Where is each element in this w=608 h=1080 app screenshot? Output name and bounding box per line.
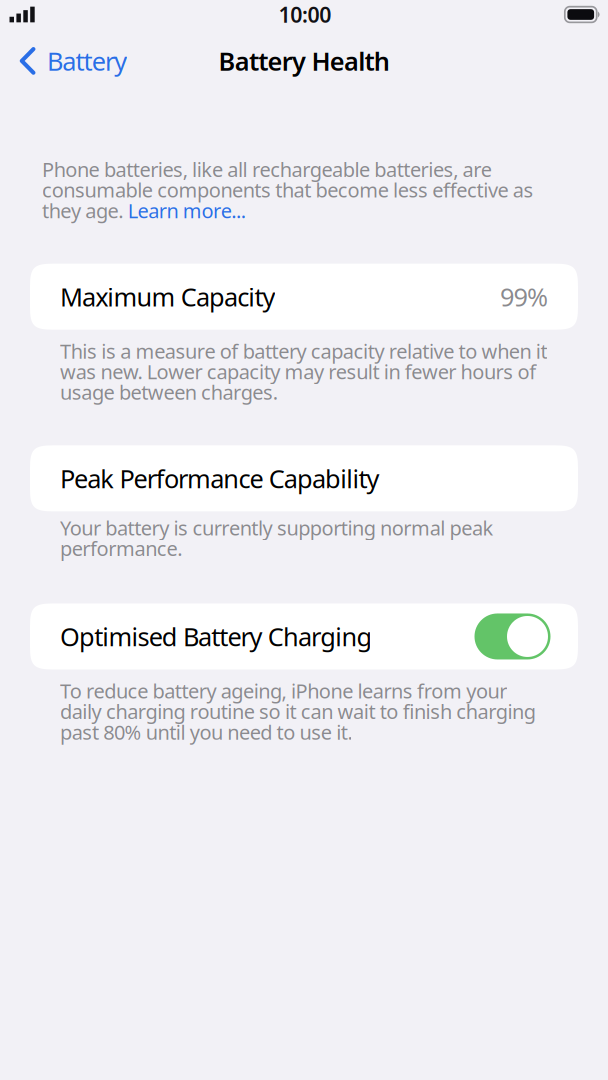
staticText: Phone batteries, like all rechargeable b… [42, 156, 492, 183]
staticText: Battery [47, 44, 127, 78]
staticText: they age. [42, 197, 128, 224]
staticText: Maximum Capacity [60, 280, 275, 313]
button[interactable]: Peak Performance Capability [30, 445, 578, 511]
staticText: Peak Performance Capability [60, 461, 380, 495]
staticText: To reduce battery ageing, iPhone learns … [60, 677, 536, 745]
button[interactable]: Learn more... [128, 197, 246, 224]
staticText: Your battery is currently supporting nor… [60, 514, 494, 561]
staticText: This is a measure of battery capacity re… [60, 338, 547, 405]
button[interactable]: Optimised Battery Charging [30, 603, 578, 669]
staticText: consumable components that become less e… [42, 177, 533, 203]
button[interactable]: Maximum Capacity [30, 264, 578, 330]
staticText: Learn more... [128, 197, 246, 224]
staticText: Battery Health [218, 44, 390, 78]
staticText: 99% [500, 280, 548, 313]
staticText: 10:00 [278, 0, 331, 29]
staticText: Optimised Battery Charging [60, 620, 372, 653]
button[interactable]: Battery [0, 34, 141, 88]
